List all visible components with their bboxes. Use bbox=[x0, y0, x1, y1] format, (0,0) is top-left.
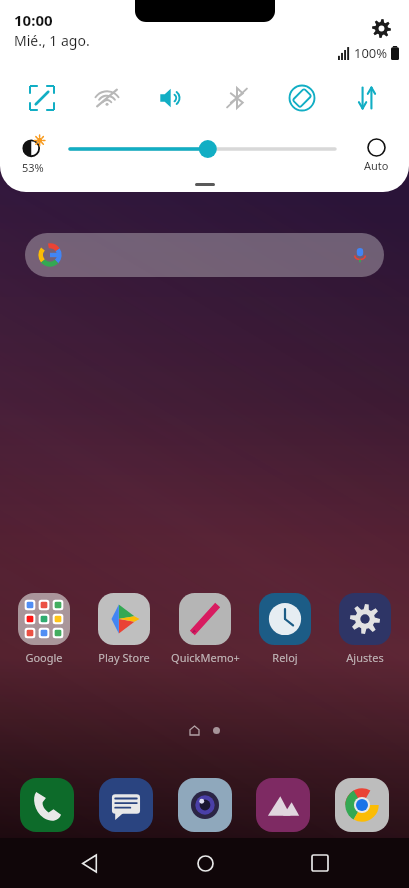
button[interactable]: Auto bbox=[364, 138, 389, 173]
button[interactable]: Reloj bbox=[249, 593, 321, 665]
staticText: Google bbox=[25, 650, 63, 665]
staticText: Reloj bbox=[272, 650, 298, 665]
button[interactable]: Back bbox=[63, 838, 115, 888]
staticText: 10:00 bbox=[14, 10, 53, 30]
button[interactable]: Settings bbox=[361, 8, 401, 48]
button[interactable]: Recents bbox=[294, 838, 346, 888]
button[interactable]: Brightness slider bbox=[70, 138, 335, 160]
button[interactable]: Chrome bbox=[330, 773, 394, 837]
staticText: Play Store bbox=[98, 650, 150, 665]
button[interactable] bbox=[25, 233, 384, 277]
button[interactable]: Sound bbox=[149, 75, 195, 121]
staticText: QuickMemo+ bbox=[171, 650, 240, 665]
button[interactable]: Camera bbox=[173, 773, 237, 837]
button[interactable]: Play Store bbox=[88, 593, 160, 665]
button[interactable]: Ajustes bbox=[329, 593, 401, 665]
button[interactable]: Expand panel bbox=[195, 183, 215, 186]
staticText: 53% bbox=[22, 160, 44, 175]
button[interactable]: Google bbox=[8, 593, 80, 665]
button[interactable]: Gallery bbox=[251, 773, 315, 837]
staticText: Mié., 1 ago. bbox=[14, 31, 90, 50]
button[interactable]: Auto-rotate bbox=[279, 75, 325, 121]
button[interactable]: Phone bbox=[15, 773, 79, 837]
staticText: 100% bbox=[354, 44, 388, 62]
button[interactable]: Mobile data bbox=[344, 75, 390, 121]
button[interactable]: Messages bbox=[94, 773, 158, 837]
staticText: Ajustes bbox=[346, 650, 384, 665]
staticText: Auto bbox=[364, 158, 389, 173]
button[interactable]: Wi-Fi off bbox=[84, 75, 130, 121]
button[interactable]: Brightness bbox=[22, 136, 44, 175]
button[interactable]: Home bbox=[179, 838, 231, 888]
button[interactable]: QuickMemo+ bbox=[169, 593, 241, 665]
button[interactable]: Bluetooth off bbox=[214, 75, 260, 121]
button[interactable]: Capture+ bbox=[19, 75, 65, 121]
